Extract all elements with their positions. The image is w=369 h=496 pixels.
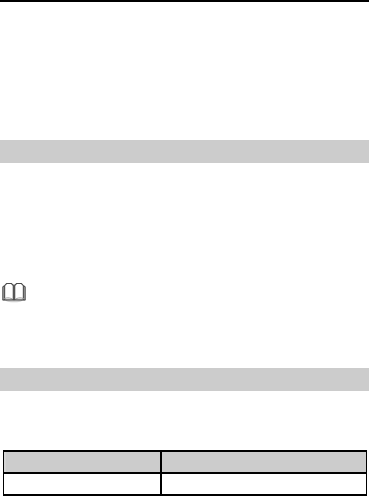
- button[interactable]: Open book: [2, 282, 26, 303]
- button[interactable]: [3, 474, 367, 494]
- button[interactable]: [3, 452, 367, 472]
